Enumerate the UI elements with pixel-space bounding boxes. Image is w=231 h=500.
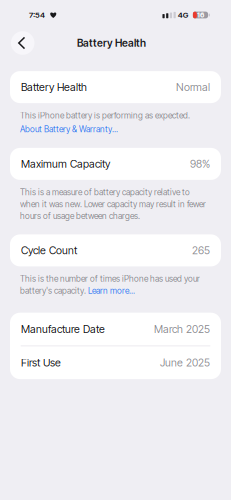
button[interactable]: Manufacture Date — [10, 313, 221, 345]
button[interactable]: About Battery & Warranty... — [20, 123, 211, 135]
staticText: June 2025 — [160, 356, 210, 369]
staticText: First Use — [21, 356, 61, 369]
button[interactable]: First Use — [10, 346, 221, 379]
staticText: when it was new. Lower capacity may resu… — [20, 199, 206, 209]
staticText: March 2025 — [154, 323, 210, 335]
button[interactable]: Learn more... — [88, 285, 135, 296]
staticText: 7:54 — [29, 10, 45, 20]
staticText: Manufacture Date — [21, 323, 105, 335]
staticText: hours of usage between charges. — [20, 211, 140, 221]
staticText: Learn more... — [88, 285, 135, 296]
button[interactable]: Maximum Capacity — [10, 148, 221, 180]
staticText: This is a measure of battery capacity re… — [20, 187, 190, 197]
staticText: Maximum Capacity — [21, 157, 110, 170]
staticText: Battery Health — [77, 37, 146, 49]
staticText: 16 — [197, 11, 204, 19]
staticText: This is the number of times iPhone has u… — [20, 274, 200, 284]
button[interactable]: Cycle Count — [10, 234, 221, 266]
staticText: Normal — [176, 81, 210, 93]
staticText: battery's capacity. — [20, 285, 88, 296]
staticText: Cycle Count — [21, 244, 77, 257]
staticText: 4G — [178, 10, 189, 20]
staticText: This iPhone battery is performing as exp… — [20, 110, 190, 121]
button[interactable]: Back — [9, 29, 36, 56]
staticText: 265 — [192, 244, 210, 257]
staticText: 98% — [190, 157, 210, 170]
button[interactable]: Battery Health — [10, 71, 221, 103]
staticText: About Battery & Warranty... — [20, 124, 118, 134]
staticText: Battery Health — [21, 81, 87, 93]
